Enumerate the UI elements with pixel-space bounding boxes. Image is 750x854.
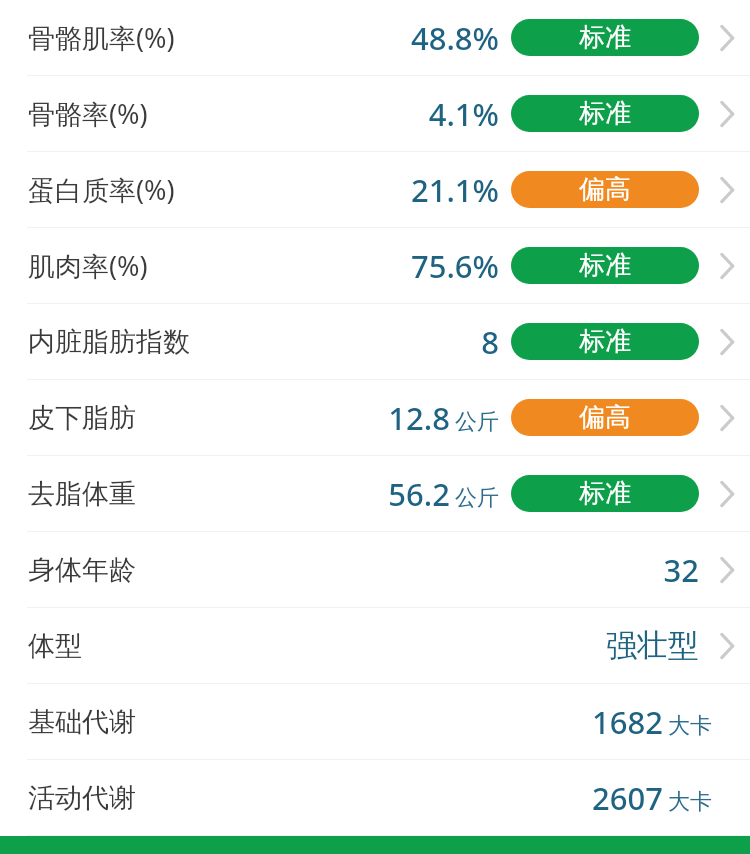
staticText: 32 <box>663 549 699 591</box>
staticText: 标准 <box>579 477 631 510</box>
button[interactable]: 去脂体重 <box>0 456 750 531</box>
button[interactable]: 体型 <box>0 608 750 683</box>
staticText: 48.8% <box>410 17 499 59</box>
button[interactable]: 肌肉率(%) <box>0 228 750 303</box>
button[interactable]: 查看详情 <box>712 466 742 522</box>
button[interactable]: 查看详情 <box>712 314 742 370</box>
staticText: 1682 <box>592 701 663 743</box>
staticText: 标准 <box>579 97 631 130</box>
staticText: 骨骼率(%) <box>28 95 148 132</box>
staticText: 体型 <box>28 629 82 663</box>
button[interactable]: 身体年龄 <box>0 532 750 607</box>
button[interactable]: 查看详情 <box>712 618 742 674</box>
button[interactable]: 偏高 <box>511 171 699 208</box>
button[interactable]: 皮下脂肪 <box>0 380 750 455</box>
button[interactable]: 标准 <box>511 475 699 512</box>
staticText: 去脂体重 <box>28 477 136 511</box>
staticText: 8 <box>481 321 499 363</box>
staticText: 标准 <box>579 249 631 282</box>
button[interactable]: 查看详情 <box>712 238 742 294</box>
button[interactable]: 偏高 <box>511 399 699 436</box>
button[interactable]: 查看详情 <box>712 86 742 142</box>
button[interactable]: 查看详情 <box>712 542 742 598</box>
staticText: 56.2 <box>388 473 450 515</box>
button[interactable]: 骨骼率(%) <box>0 76 750 151</box>
staticText: 基础代谢 <box>28 705 136 739</box>
button[interactable]: 查看详情 <box>712 162 742 218</box>
button[interactable]: 蛋白质率(%) <box>0 152 750 227</box>
staticText: 公斤 <box>455 484 499 512</box>
button[interactable]: 查看详情 <box>712 390 742 446</box>
staticText: 皮下脂肪 <box>28 401 136 435</box>
button[interactable]: 骨骼肌率(%) <box>0 0 750 75</box>
staticText: 21.1% <box>410 169 499 211</box>
staticText: 偏高 <box>579 173 631 206</box>
staticText: 标准 <box>579 21 631 54</box>
staticText: 公斤 <box>455 408 499 436</box>
staticText: 大卡 <box>668 712 712 740</box>
button[interactable]: 基础代谢 <box>0 684 750 759</box>
staticText: 4.1% <box>428 93 499 135</box>
staticText: 偏高 <box>579 401 631 434</box>
staticText: 肌肉率(%) <box>28 247 148 284</box>
staticText: 75.6% <box>410 245 499 287</box>
button[interactable]: 标准 <box>511 323 699 360</box>
staticText: 12.8 <box>388 397 450 439</box>
button[interactable]: 标准 <box>511 95 699 132</box>
staticText: 强壮型 <box>606 626 699 665</box>
button[interactable]: 标准 <box>511 19 699 56</box>
staticText: 骨骼肌率(%) <box>28 19 175 56</box>
button[interactable]: 查看详情 <box>712 10 742 66</box>
staticText: 身体年龄 <box>28 553 136 587</box>
button[interactable]: 活动代谢 <box>0 760 750 835</box>
button[interactable]: 标准 <box>511 247 699 284</box>
staticText: 大卡 <box>668 788 712 816</box>
staticText: 活动代谢 <box>28 781 136 815</box>
staticText: 蛋白质率(%) <box>28 171 175 208</box>
staticText: 标准 <box>579 325 631 358</box>
staticText: 2607 <box>592 777 663 819</box>
staticText: 内脏脂肪指数 <box>28 325 190 359</box>
button[interactable]: 内脏脂肪指数 <box>0 304 750 379</box>
